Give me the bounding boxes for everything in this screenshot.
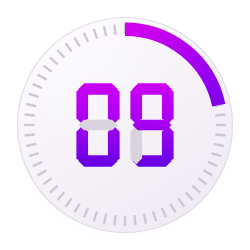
button[interactable]: Digital countdown watch face, 09 bbox=[0, 0, 250, 250]
